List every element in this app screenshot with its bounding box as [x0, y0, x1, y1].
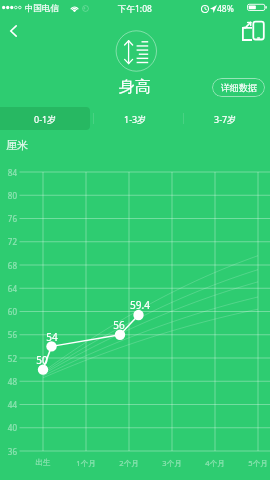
- staticText: 44: [2, 399, 17, 410]
- button[interactable]: Connect device: [237, 18, 269, 44]
- staticText: 详细数据: [221, 82, 257, 93]
- staticText: 76: [2, 213, 17, 224]
- staticText: 60: [2, 306, 17, 317]
- staticText: 4个月: [199, 458, 231, 468]
- staticText: 下午1:08: [118, 3, 152, 15]
- staticText: 59.4: [126, 298, 154, 312]
- staticText: 1-3岁: [124, 113, 147, 125]
- staticText: 厘米: [6, 138, 28, 152]
- staticText: 72: [2, 236, 17, 247]
- staticText: 64: [2, 283, 17, 294]
- staticText: 出生: [27, 458, 59, 467]
- staticText: 80: [2, 190, 17, 201]
- staticText: 56: [2, 329, 17, 340]
- staticText: 中国电信: [25, 3, 59, 14]
- button[interactable]: Back: [0, 20, 26, 42]
- staticText: 84: [2, 167, 17, 178]
- staticText: 5个月: [242, 458, 270, 468]
- button[interactable]: 1-3岁: [90, 107, 180, 130]
- button[interactable]: 详细数据: [212, 78, 265, 97]
- staticText: 48: [2, 376, 17, 387]
- staticText: 52: [2, 353, 17, 364]
- staticText: 3-7岁: [214, 113, 237, 125]
- button[interactable]: 3-7岁: [180, 107, 270, 130]
- button[interactable]: 0-1岁: [0, 107, 90, 130]
- staticText: 50: [28, 353, 56, 367]
- staticText: 36: [2, 446, 17, 457]
- staticText: 54: [38, 330, 66, 344]
- staticText: 1个月: [70, 458, 102, 468]
- staticText: 56: [105, 318, 133, 332]
- staticText: 0-1岁: [34, 113, 57, 125]
- staticText: 40: [2, 422, 17, 433]
- staticText: 48%: [217, 3, 234, 15]
- staticText: 3个月: [156, 458, 188, 468]
- staticText: 身高: [119, 77, 151, 97]
- staticText: 68: [2, 260, 17, 271]
- staticText: 2个月: [113, 458, 145, 468]
